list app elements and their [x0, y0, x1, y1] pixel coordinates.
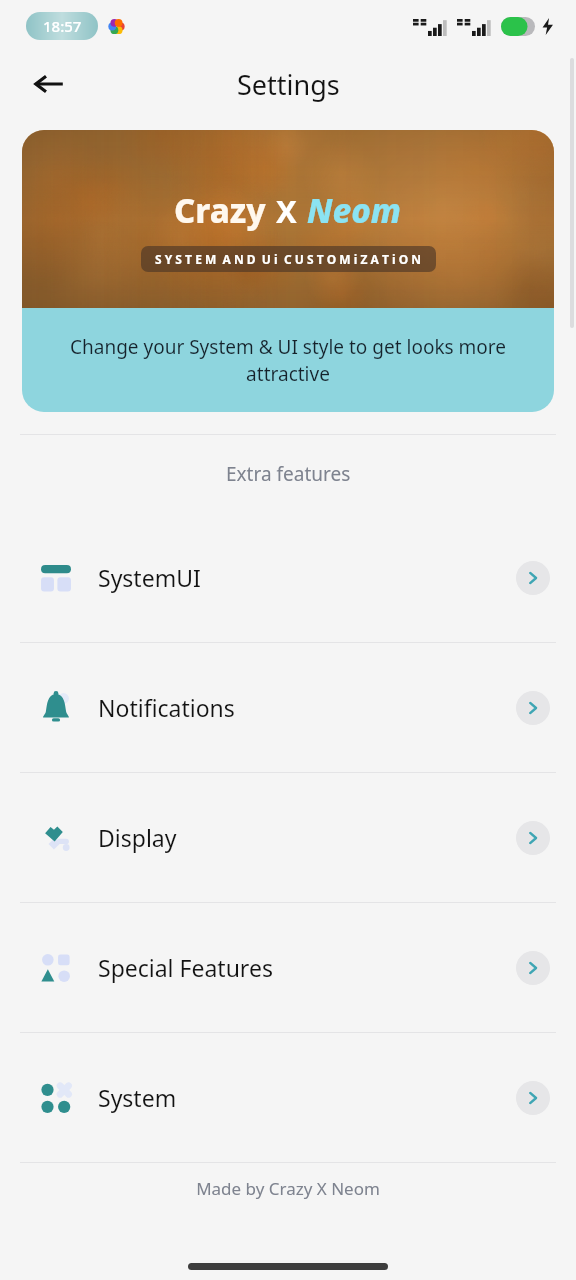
button[interactable]: Special Features [0, 903, 576, 1032]
staticText: Special Features [98, 952, 516, 983]
staticText: Change your System & UI style to get loo… [44, 334, 532, 387]
button[interactable]: Crazy [22, 130, 554, 412]
staticText: Extra features [226, 461, 351, 487]
button[interactable]: Display [0, 773, 576, 902]
staticText: Crazy [174, 188, 266, 233]
staticText: X [276, 190, 297, 232]
staticText: 18:57 [43, 16, 82, 36]
staticText: Notifications [98, 692, 516, 723]
button[interactable]: Back [26, 61, 72, 107]
staticText: Display [98, 822, 516, 853]
staticText: Neom [307, 188, 402, 233]
button[interactable]: System [0, 1033, 576, 1162]
staticText: System [98, 1082, 516, 1113]
staticText: Settings [237, 66, 340, 103]
staticText: S Y S T E M A N D U i C U S T O M i Z A … [155, 251, 422, 267]
staticText: Made by Crazy X Neom [0, 1177, 576, 1200]
button[interactable]: Notifications [0, 643, 576, 772]
staticText: SystemUI [98, 562, 516, 593]
button[interactable]: SystemUI [0, 513, 576, 642]
